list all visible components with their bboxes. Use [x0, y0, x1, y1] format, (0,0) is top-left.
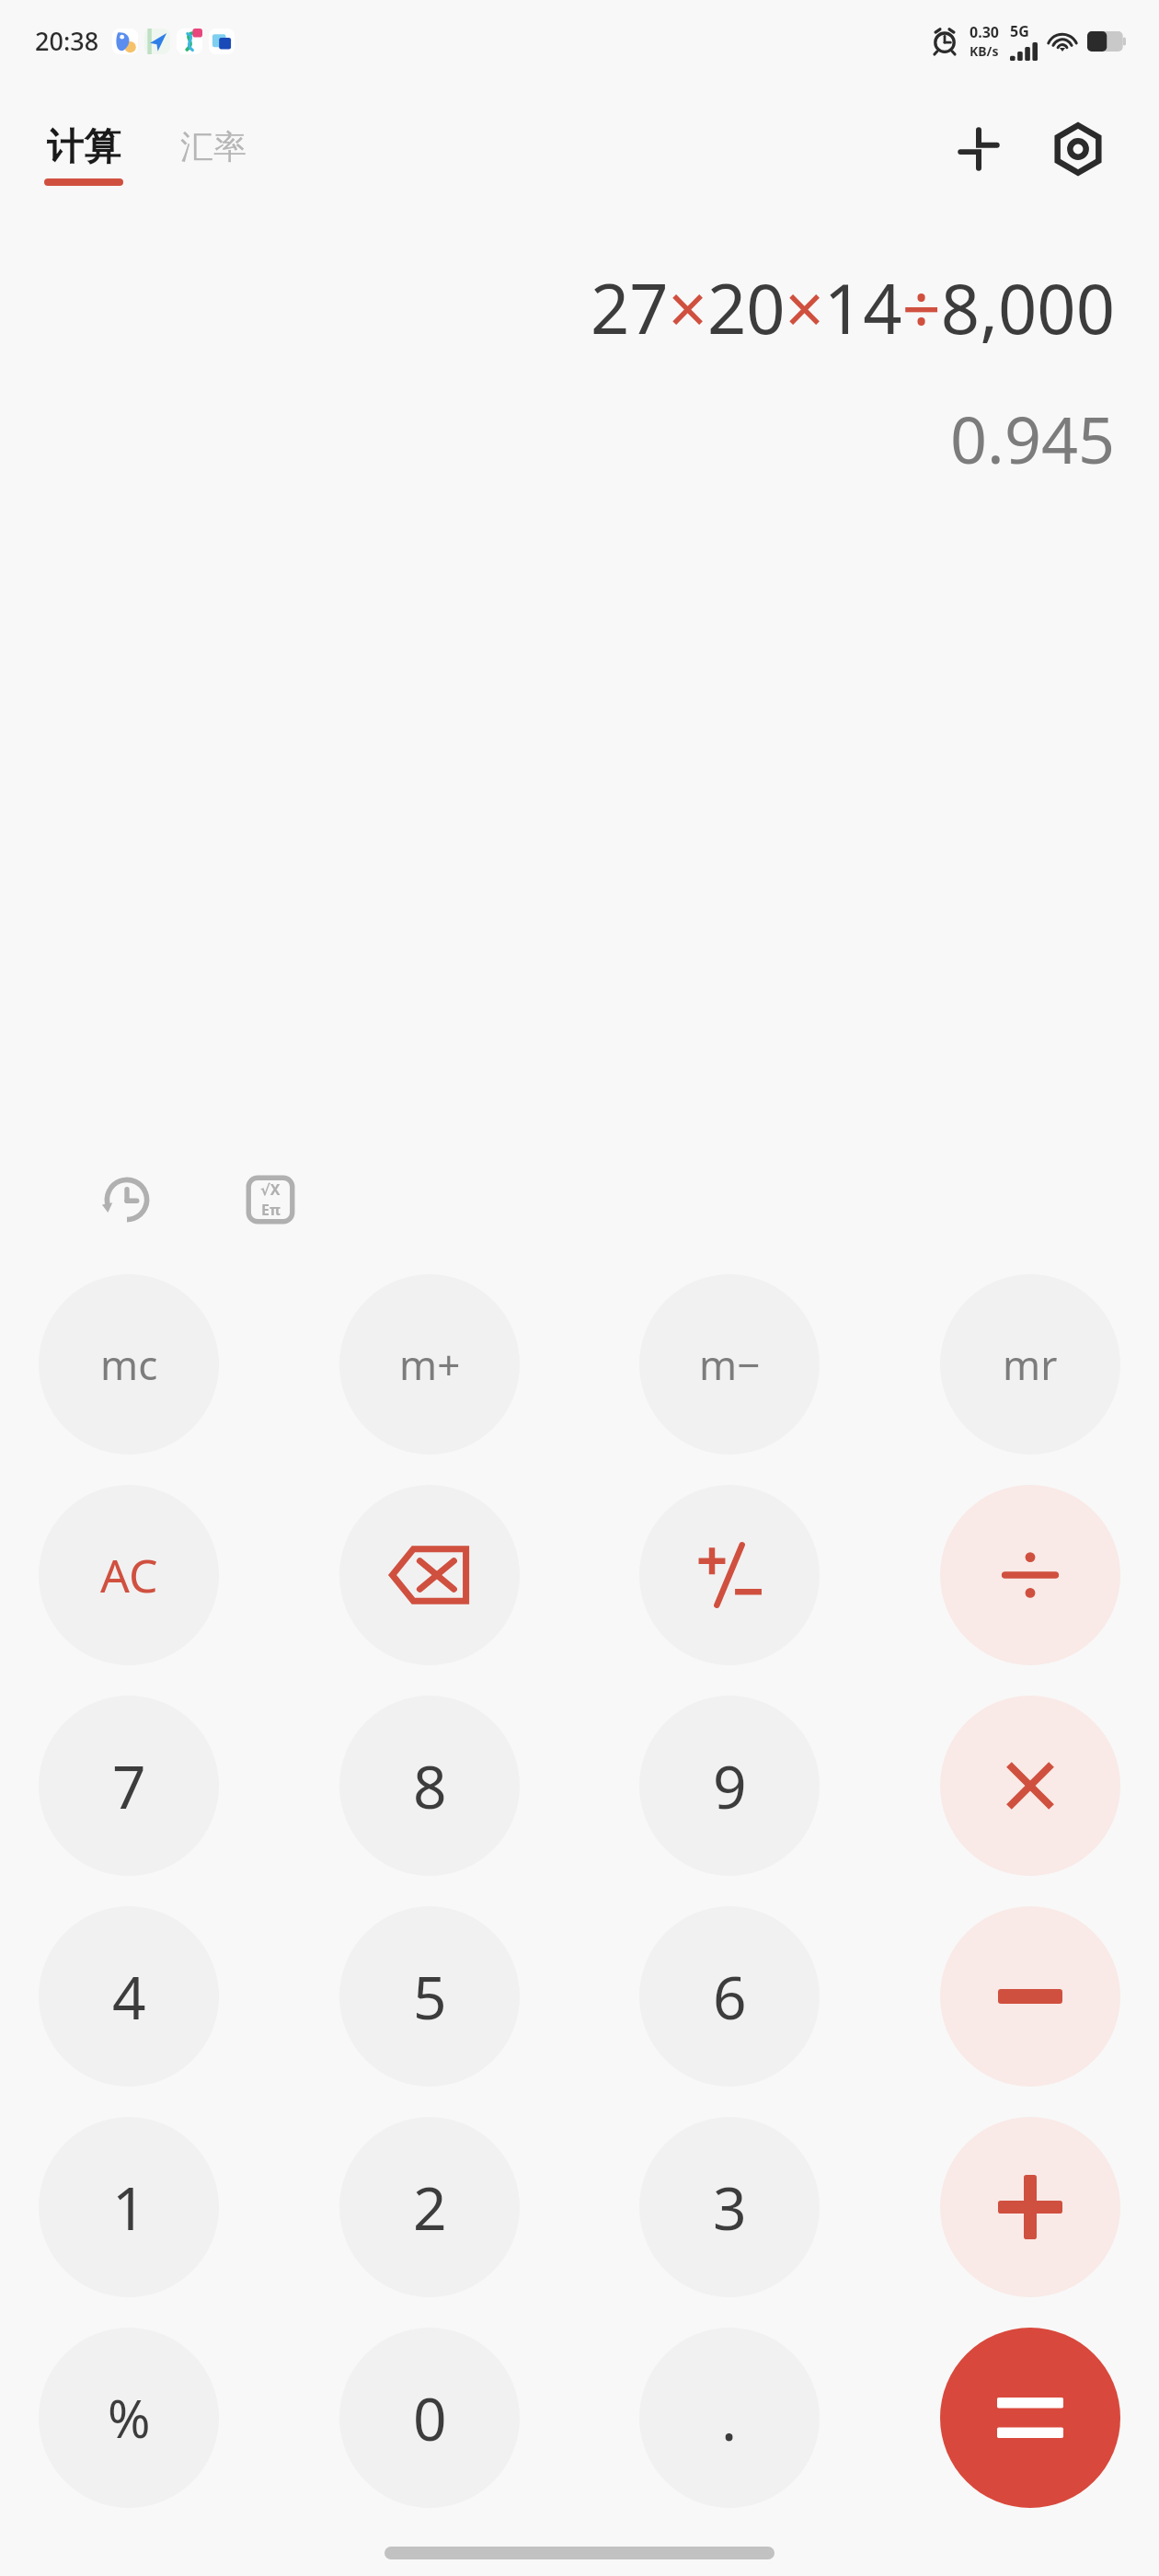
button[interactable]: 0 [339, 2328, 520, 2508]
button[interactable]: . [639, 2328, 820, 2508]
staticText: 0.30 [970, 22, 999, 42]
staticText: 3 [713, 2168, 747, 2248]
staticText: 计算 [47, 123, 120, 169]
button[interactable]: 8 [339, 1696, 520, 1876]
staticText: 8 [413, 1746, 447, 1826]
staticText: Eπ [261, 1200, 281, 1220]
button[interactable]: Plus minus [639, 1485, 820, 1665]
button[interactable]: Divide [940, 1485, 1120, 1665]
button[interactable]: mc [39, 1274, 219, 1455]
button[interactable]: Settings [1039, 110, 1117, 188]
button[interactable]: Backspace [339, 1485, 520, 1665]
staticText: 20:38 [35, 24, 99, 58]
staticText: m+ [399, 1337, 461, 1392]
staticText: 6 [713, 1957, 747, 2037]
staticText: mr [1003, 1337, 1058, 1392]
button[interactable]: Plus [940, 2117, 1120, 2297]
staticText: 0.945 [950, 395, 1115, 482]
staticText: 1 [112, 2168, 146, 2248]
button[interactable]: 9 [639, 1696, 820, 1876]
button[interactable]: 4 [39, 1906, 219, 2087]
staticText: mc [100, 1337, 158, 1392]
staticText: 5 [413, 1957, 447, 2037]
button[interactable]: 2 [339, 2117, 520, 2297]
button[interactable]: m+ [339, 1274, 520, 1455]
button[interactable]: 7 [39, 1696, 219, 1876]
button[interactable]: Scientific mode [232, 1161, 309, 1238]
button[interactable]: % [39, 2328, 219, 2508]
staticText: 7 [112, 1746, 146, 1826]
staticText: m− [699, 1337, 761, 1392]
staticText: KB/s [970, 42, 999, 60]
button[interactable]: Multiply [940, 1696, 1120, 1876]
button[interactable]: mr [940, 1274, 1120, 1455]
button[interactable]: History [88, 1161, 166, 1238]
staticText: 汇率 [180, 126, 247, 167]
button[interactable]: 1 [39, 2117, 219, 2297]
staticText: 5G [1010, 21, 1029, 41]
staticText: √X [260, 1179, 281, 1200]
staticText: 2 [413, 2168, 447, 2248]
button[interactable]: Minus [940, 1906, 1120, 2087]
button[interactable]: m− [639, 1274, 820, 1455]
staticText: . [721, 2378, 738, 2458]
staticText: 4 [112, 1957, 146, 2037]
button[interactable]: Resize window [940, 110, 1017, 188]
staticText: 27×20×14÷8,000 [590, 261, 1115, 354]
button[interactable]: 6 [639, 1906, 820, 2087]
staticText: 9 [713, 1746, 747, 1826]
staticText: % [108, 2383, 151, 2453]
button[interactable]: AC [39, 1485, 219, 1665]
staticText: 0 [413, 2378, 447, 2458]
button[interactable]: 5 [339, 1906, 520, 2087]
button[interactable]: 汇率 [173, 121, 254, 190]
button[interactable]: 计算 [37, 118, 131, 191]
button[interactable]: Equals [940, 2328, 1120, 2508]
staticText: AC [100, 1544, 158, 1606]
button[interactable]: 3 [639, 2117, 820, 2297]
